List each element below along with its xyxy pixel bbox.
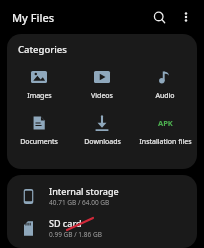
staticText: Installation files bbox=[139, 137, 192, 147]
staticText: SD card bbox=[49, 217, 82, 229]
button[interactable]: Videos bbox=[71, 65, 133, 103]
staticText: APK bbox=[158, 118, 173, 128]
staticText: Documents bbox=[20, 137, 58, 147]
staticText: 40.71 GB / 64.00 GB bbox=[49, 198, 110, 207]
button[interactable]: Internal storage bbox=[7, 181, 197, 211]
button[interactable]: Documents bbox=[8, 111, 70, 149]
button[interactable]: Search bbox=[145, 3, 173, 31]
staticText: My Files bbox=[12, 10, 55, 25]
staticText: Audio bbox=[155, 91, 175, 101]
staticText: Images bbox=[27, 91, 52, 101]
button[interactable]: Images bbox=[8, 65, 70, 103]
button[interactable]: More options bbox=[173, 4, 199, 30]
button[interactable]: APK bbox=[134, 111, 196, 149]
staticText: 0.99 GB / 1.86 GB bbox=[49, 230, 102, 239]
button[interactable]: Audio bbox=[134, 65, 196, 103]
button[interactable]: SD card bbox=[7, 213, 197, 243]
staticText: Videos bbox=[91, 91, 113, 101]
button[interactable]: Downloads bbox=[71, 111, 133, 149]
staticText: Internal storage bbox=[49, 185, 119, 197]
staticText: Downloads bbox=[84, 137, 121, 147]
staticText: Categories bbox=[18, 43, 67, 56]
